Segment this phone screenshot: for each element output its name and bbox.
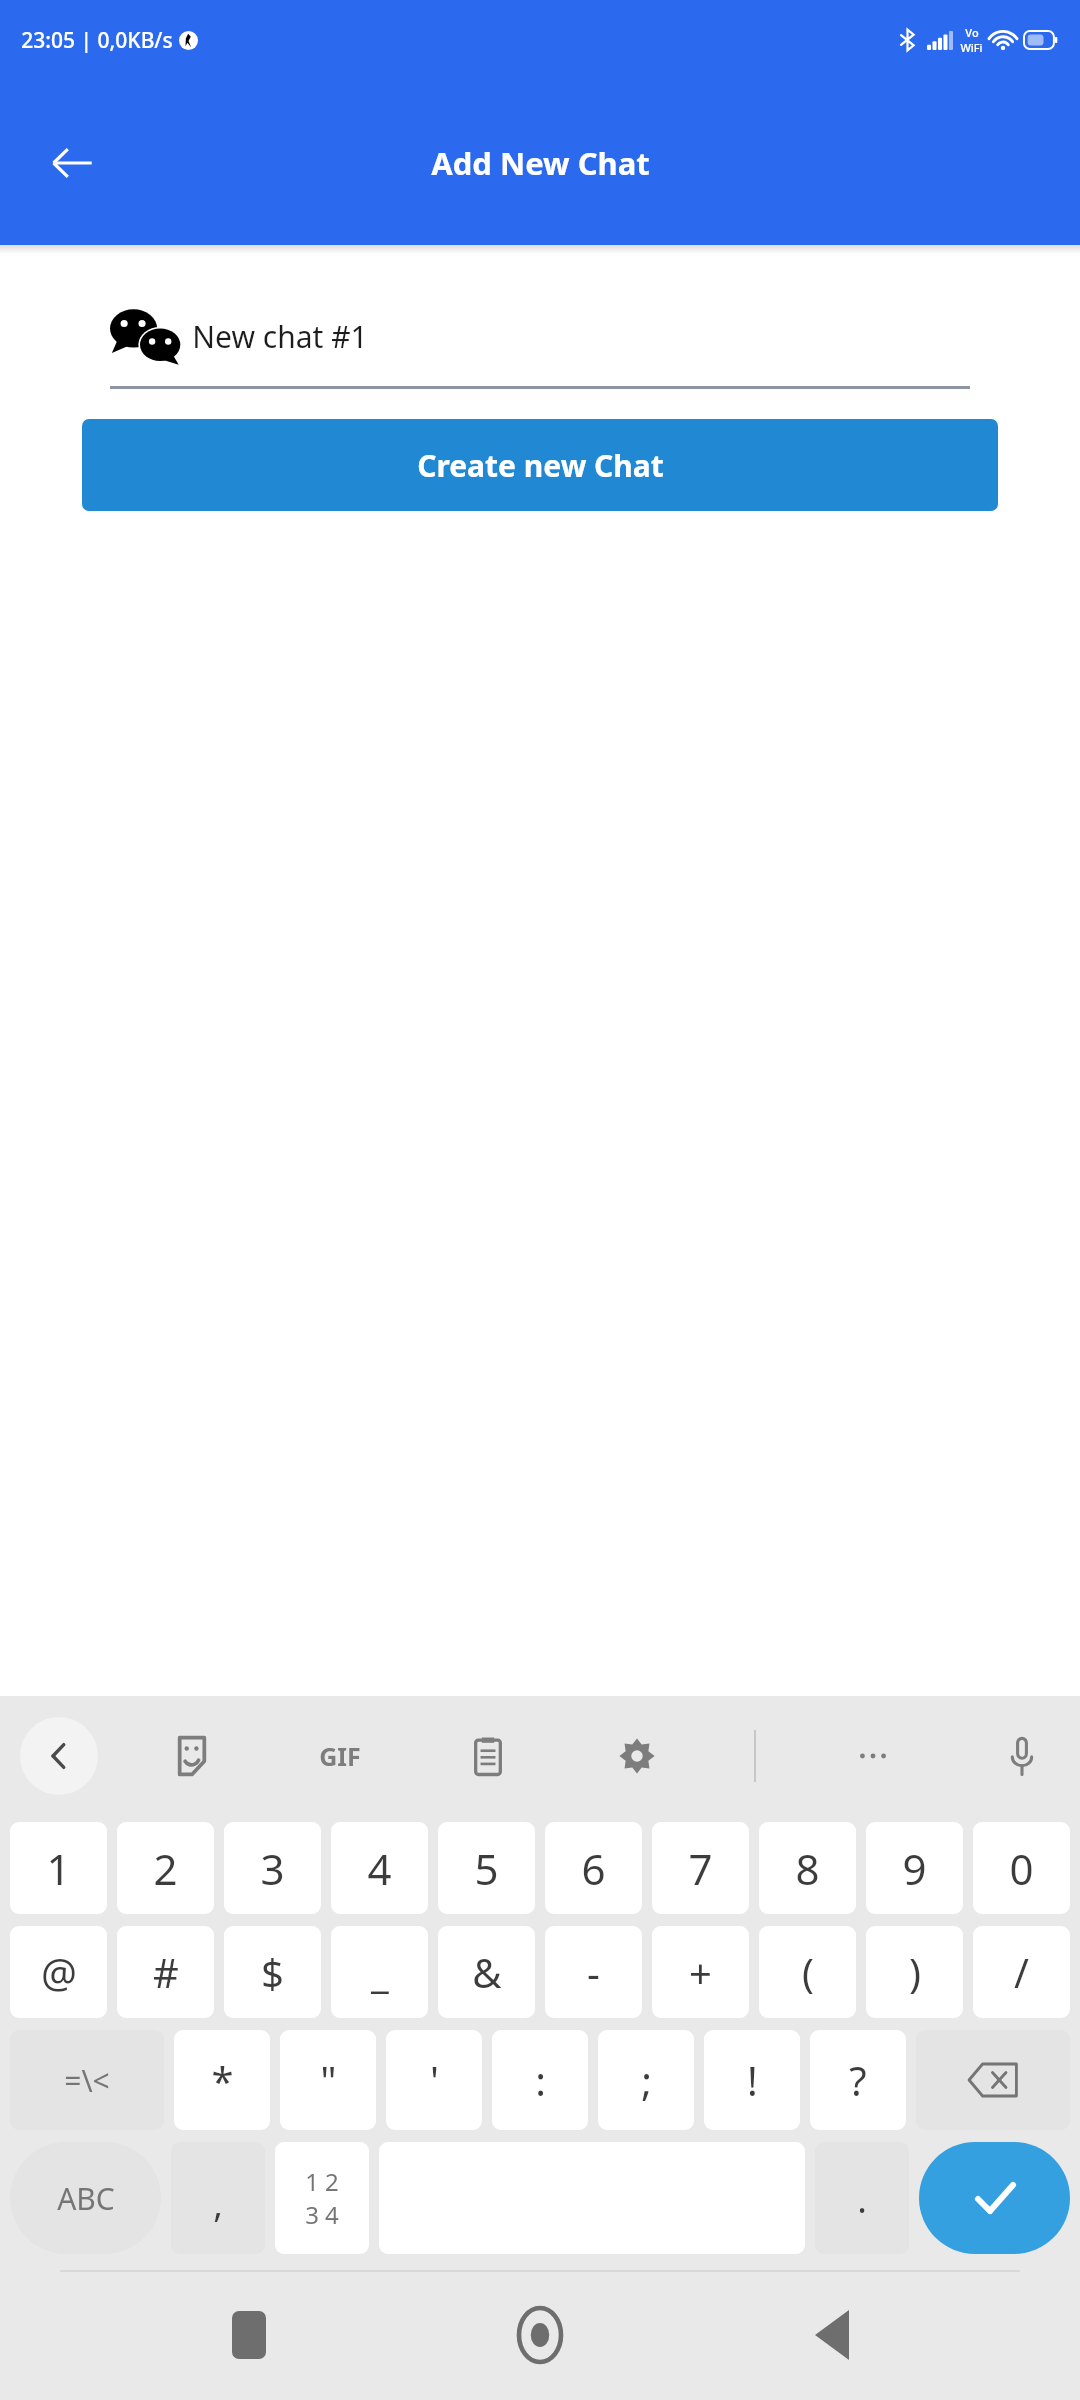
button[interactable]: 0 <box>973 1822 1070 1914</box>
button[interactable]: / <box>973 1926 1070 2018</box>
button[interactable]: 1 <box>10 1822 107 1914</box>
staticText: 5 <box>474 1840 499 1897</box>
staticText: ( <box>802 1945 814 1999</box>
staticText: 4 <box>367 1840 392 1897</box>
button[interactable]: Numbers <box>275 2142 369 2254</box>
button[interactable]: Close keyboard panel <box>20 1717 98 1795</box>
button[interactable]: " <box>280 2030 376 2130</box>
staticText: " <box>320 2053 337 2107</box>
staticText: - <box>587 1945 600 1999</box>
button[interactable]: 8 <box>759 1822 856 1914</box>
staticText: 1 2 <box>305 2165 339 2198</box>
staticText: & <box>472 1945 502 1999</box>
button[interactable]: New chat #1 <box>110 300 970 372</box>
staticText: ! <box>747 2053 758 2107</box>
staticText: 23:05 | 0,0KB/s <box>21 26 173 55</box>
staticText: Vo <box>965 25 979 40</box>
button[interactable]: : <box>492 2030 588 2130</box>
staticText: 8 <box>795 1840 820 1897</box>
button[interactable]: ! <box>704 2030 800 2130</box>
button[interactable]: Voice input <box>990 1724 1054 1788</box>
staticText: . <box>857 2175 867 2224</box>
button[interactable]: Back <box>789 2292 875 2378</box>
staticText: 0 <box>1009 1840 1034 1897</box>
staticText: 3 4 <box>305 2198 339 2231</box>
staticText: =\< <box>64 2060 110 2101</box>
staticText: ? <box>849 2053 867 2107</box>
staticText: Create new Chat <box>417 445 664 486</box>
button[interactable]: Home <box>497 2292 583 2378</box>
staticText: New chat #1 <box>192 316 368 357</box>
staticText: Add New Chat <box>431 142 650 184</box>
button[interactable]: ; <box>598 2030 694 2130</box>
button[interactable]: Stickers <box>160 1724 224 1788</box>
button[interactable]: ( <box>759 1926 856 2018</box>
button[interactable]: Recents <box>206 2292 292 2378</box>
button[interactable]: + <box>652 1926 749 2018</box>
button[interactable]: . <box>815 2142 909 2254</box>
button[interactable]: ' <box>386 2030 482 2130</box>
staticText: * <box>211 2053 234 2107</box>
staticText: , <box>213 2179 223 2228</box>
staticText: 2 <box>153 1840 178 1897</box>
button[interactable]: 6 <box>545 1822 642 1914</box>
staticText: WiFi <box>960 40 983 55</box>
button[interactable]: ? <box>810 2030 906 2130</box>
button[interactable]: $ <box>224 1926 321 2018</box>
staticText: : <box>535 2053 546 2107</box>
button[interactable]: 9 <box>866 1822 963 1914</box>
staticText: 1 <box>46 1840 71 1897</box>
staticText: ; <box>641 2053 652 2107</box>
staticText: + <box>689 1945 712 1999</box>
staticText: $ <box>261 1945 284 1999</box>
staticText: GIF <box>319 1739 361 1773</box>
button[interactable]: Settings <box>605 1724 669 1788</box>
button[interactable]: GIF <box>308 1724 372 1788</box>
staticText: ABC <box>57 2178 115 2219</box>
button[interactable]: # <box>117 1926 214 2018</box>
button[interactable]: - <box>545 1926 642 2018</box>
button[interactable]: ABC <box>10 2142 161 2254</box>
button[interactable]: Create new Chat <box>82 419 998 511</box>
button[interactable]: @ <box>10 1926 107 2018</box>
button[interactable]: * <box>174 2030 270 2130</box>
button[interactable]: 7 <box>652 1822 749 1914</box>
staticText: 7 <box>688 1840 713 1897</box>
button[interactable]: 4 <box>331 1822 428 1914</box>
button[interactable]: ) <box>866 1926 963 2018</box>
button[interactable]: 3 <box>224 1822 321 1914</box>
staticText: @ <box>41 1945 77 1999</box>
button[interactable]: =\< <box>10 2030 164 2130</box>
button[interactable]: 2 <box>117 1822 214 1914</box>
staticText: ) <box>909 1945 921 1999</box>
staticText: 3 <box>260 1840 285 1897</box>
staticText: / <box>1014 1945 1029 1999</box>
button[interactable]: Done <box>919 2142 1070 2254</box>
button[interactable]: & <box>438 1926 535 2018</box>
button[interactable]: , <box>171 2142 265 2254</box>
button[interactable]: Backspace <box>916 2030 1070 2130</box>
button[interactable]: Clipboard <box>456 1724 520 1788</box>
staticText: _ <box>371 1945 389 1999</box>
button[interactable]: More options <box>841 1724 905 1788</box>
button[interactable]: _ <box>331 1926 428 2018</box>
staticText: # <box>153 1945 179 1999</box>
staticText: ' <box>430 2053 439 2107</box>
staticText: 9 <box>902 1840 927 1897</box>
staticText: 6 <box>581 1840 606 1897</box>
button[interactable]: 5 <box>438 1822 535 1914</box>
button[interactable]: Back <box>36 127 108 199</box>
